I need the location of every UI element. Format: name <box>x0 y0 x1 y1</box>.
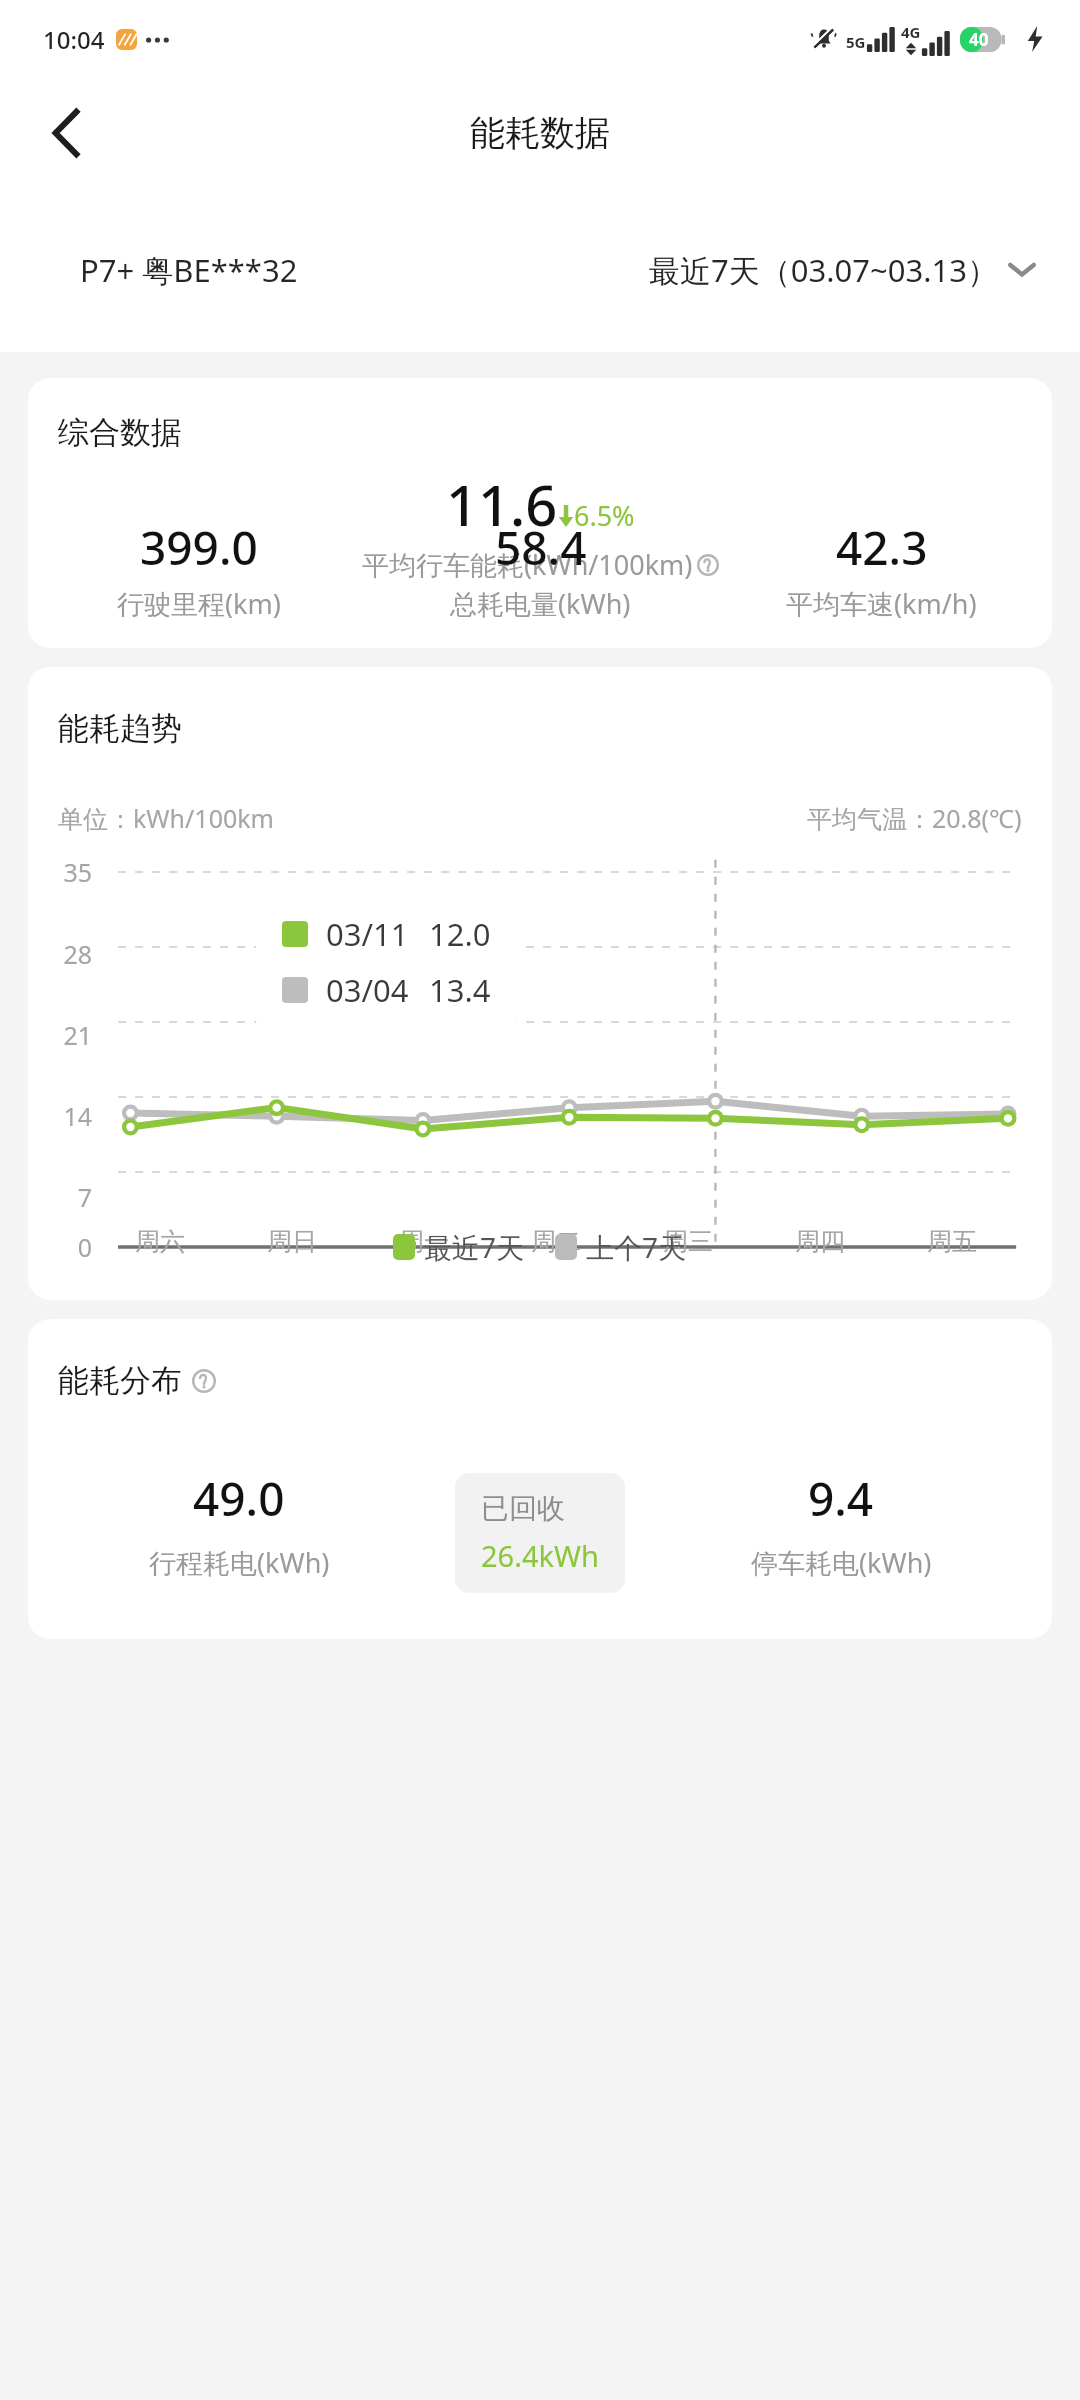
button[interactable]: 最近7天（03.07~03.13） <box>649 249 1036 291</box>
staticText: 最近7天（03.07~03.13） <box>649 249 998 291</box>
staticText: 6.5% <box>574 497 635 534</box>
staticText: 平均行车能耗(kWh/100km) <box>362 546 693 583</box>
staticText: 行程耗电(kWh) <box>149 1544 330 1581</box>
staticText: 综合数据 <box>58 413 182 452</box>
staticText: 42.3 <box>836 516 928 579</box>
staticText: 周一 <box>399 1226 449 1257</box>
staticText: 4G <box>901 22 921 42</box>
staticText: 5G <box>846 32 866 52</box>
staticText: 周六 <box>135 1226 185 1257</box>
button[interactable]: 最近7天 <box>393 1228 525 1266</box>
staticText: 行驶里程(km) <box>117 585 281 622</box>
staticText: 停车耗电(kWh) <box>751 1544 932 1581</box>
staticText: 周三 <box>663 1226 713 1257</box>
button[interactable]: 上个7天 <box>555 1228 687 1266</box>
staticText: 03/04 <box>326 969 409 1011</box>
staticText: 40 <box>969 28 989 51</box>
staticText: 已回收 <box>481 1491 565 1526</box>
staticText: 7 <box>36 1180 92 1214</box>
staticText: 能耗数据 <box>470 111 610 155</box>
staticText: 0 <box>36 1230 92 1264</box>
staticText: 平均气温：20.8(℃) <box>807 801 1022 835</box>
staticText: 单位：kWh/100km <box>58 801 274 835</box>
staticText: 总耗电量(kWh) <box>450 585 631 622</box>
staticText: 能耗分布 <box>58 1361 182 1400</box>
staticText: 14 <box>36 1099 92 1133</box>
staticText: 上个7天 <box>586 1228 687 1266</box>
staticText: 周日 <box>267 1226 317 1257</box>
staticText: 平均车速(km/h) <box>786 585 977 622</box>
staticText: 10:04 <box>43 23 105 56</box>
staticText: 周五 <box>927 1226 977 1257</box>
staticText: 58.4 <box>495 516 587 579</box>
staticText: 11.6 <box>446 466 558 542</box>
staticText: 49.0 <box>193 1467 285 1530</box>
staticText: 12.0 <box>429 913 491 955</box>
staticText: 9.4 <box>808 1467 874 1530</box>
staticText: 最近7天 <box>424 1228 525 1266</box>
staticText: 35 <box>36 855 92 889</box>
staticText: 21 <box>36 1018 92 1052</box>
staticText: 26.4kWh <box>481 1536 599 1575</box>
staticText: 13.4 <box>429 969 491 1011</box>
staticText: 28 <box>36 937 92 971</box>
staticText: 周二 <box>531 1226 581 1257</box>
staticText: P7+ 粤BE***32 <box>80 249 298 291</box>
staticText: 399.0 <box>140 516 258 579</box>
staticText: 03/11 <box>326 913 409 955</box>
staticText: 周四 <box>795 1226 845 1257</box>
staticText: 能耗趋势 <box>58 709 182 748</box>
button[interactable]: Back <box>30 97 102 169</box>
